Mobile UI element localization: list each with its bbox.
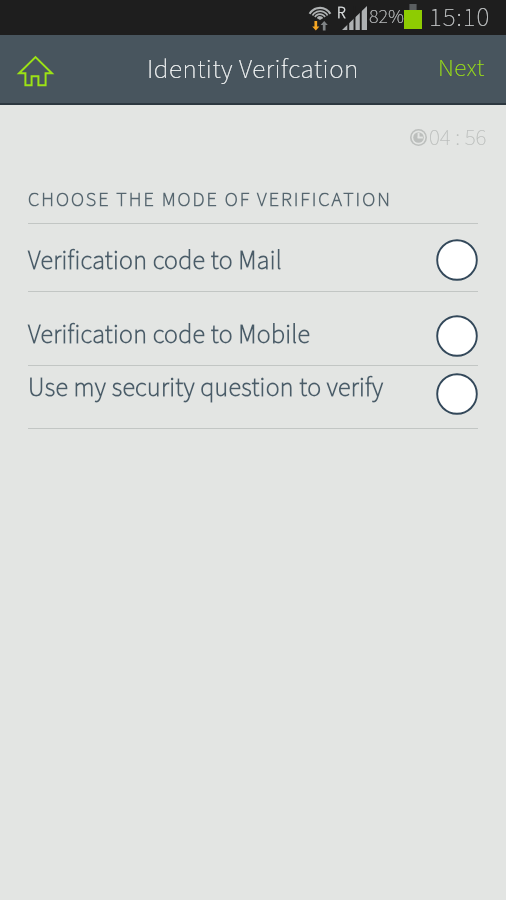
staticText: Identity Verifcation <box>147 50 359 88</box>
button[interactable]: Next <box>422 38 506 98</box>
button[interactable]: Use my security question to verify <box>0 365 506 410</box>
staticText: 04 : 56 <box>429 121 487 154</box>
staticText: 15:10 <box>429 0 491 33</box>
button[interactable]: Home <box>0 35 66 105</box>
staticText: Verification code to Mail <box>28 242 283 279</box>
staticText: R <box>337 2 346 25</box>
button[interactable]: Verification code to Mobile <box>0 303 506 365</box>
staticText: Verification code to Mobile <box>28 316 311 353</box>
staticText: Next <box>438 50 485 86</box>
staticText: Use my security question to verify <box>28 369 384 406</box>
staticText: CHOOSE THE MODE OF VERIFICATION <box>28 186 392 214</box>
button[interactable]: Verification code to Mail <box>0 229 506 291</box>
staticText: 82% <box>369 3 404 31</box>
